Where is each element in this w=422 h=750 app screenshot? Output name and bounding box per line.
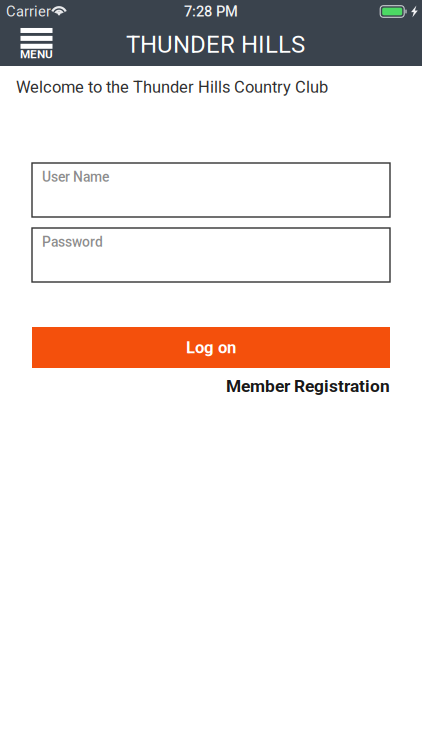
staticText: MENU: [20, 47, 53, 61]
button[interactable]: Member Registration: [226, 376, 390, 396]
button[interactable]: Log on: [32, 327, 390, 368]
staticText: THUNDER HILLS: [126, 30, 305, 58]
button[interactable]: Menu: [15, 25, 58, 64]
staticText: User Name: [42, 169, 109, 185]
staticText: Password: [42, 234, 103, 250]
staticText: Welcome to the Thunder Hills Country Clu…: [16, 77, 328, 97]
staticText: Log on: [186, 338, 236, 357]
staticText: Member Registration: [226, 376, 390, 396]
staticText: 7:28 PM: [184, 3, 238, 20]
staticText: Carrier: [6, 3, 51, 20]
